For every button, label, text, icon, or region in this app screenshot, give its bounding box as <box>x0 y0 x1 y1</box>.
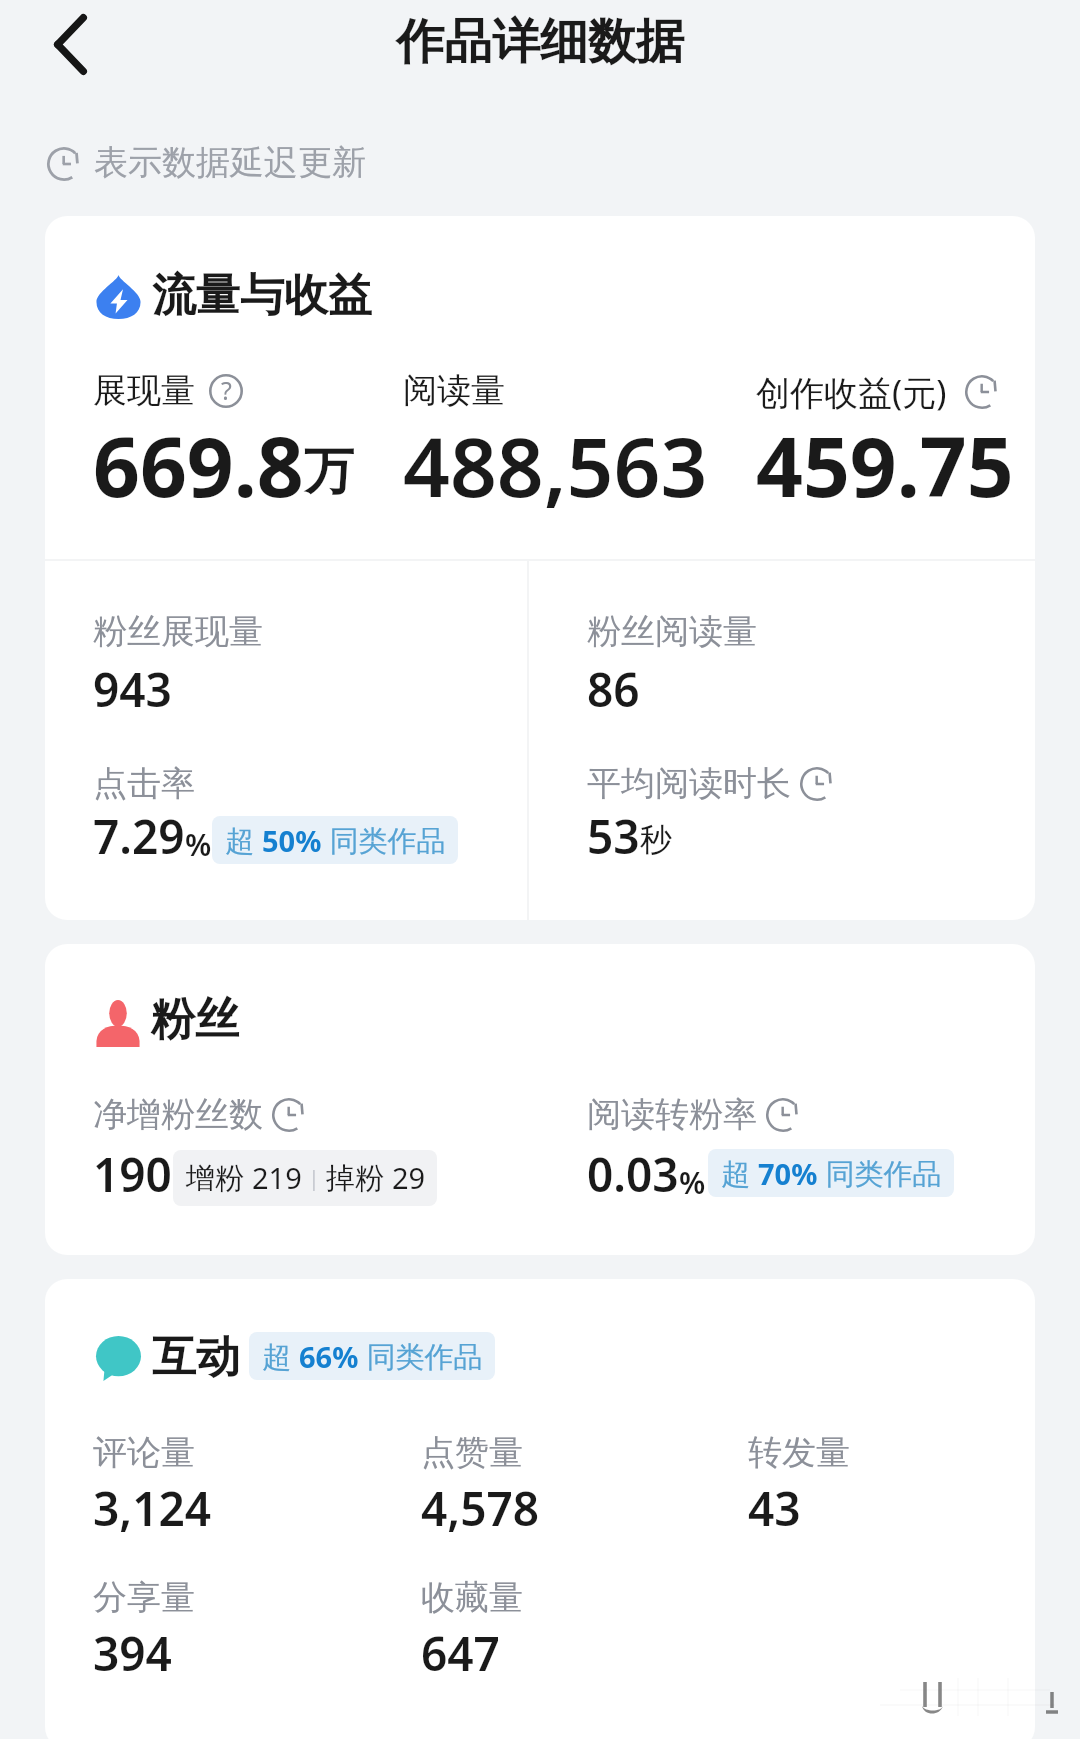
staticText: 流量与收益 <box>152 268 372 323</box>
staticText: 190 <box>93 1143 172 1206</box>
staticText: 43 <box>748 1477 801 1540</box>
staticText: 86 <box>587 658 640 721</box>
staticText: 展现量 <box>93 369 195 412</box>
button[interactable]: 超 <box>212 816 458 864</box>
staticText: ? <box>221 373 232 407</box>
staticText: 转发量 <box>748 1431 850 1474</box>
staticText: 平均阅读时长 <box>587 762 791 805</box>
staticText: 分享量 <box>93 1576 195 1619</box>
staticText: 4,578 <box>421 1477 540 1540</box>
button[interactable]: 超 <box>708 1149 954 1197</box>
staticText: 收藏量 <box>421 1576 523 1619</box>
staticText: 669.8 <box>93 409 304 521</box>
staticText: 66% <box>299 1337 359 1376</box>
staticText: 阅读量 <box>403 369 505 412</box>
staticText: 作品详细数据 <box>396 12 684 72</box>
staticText: 53 <box>587 805 640 868</box>
staticText: 7.29 <box>93 805 185 868</box>
staticText: 秒 <box>640 820 672 860</box>
staticText: 647 <box>421 1622 500 1672</box>
staticText: 超 <box>721 1153 758 1193</box>
staticText: 394 <box>93 1622 172 1672</box>
staticText: 增粉 <box>186 1157 252 1197</box>
staticText: 阅读转粉率 <box>587 1093 757 1136</box>
staticText: 评论量 <box>93 1431 195 1474</box>
staticText: 点赞量 <box>421 1431 523 1474</box>
staticText: 0.03 <box>587 1143 679 1206</box>
staticText: 净增粉丝数 <box>93 1093 263 1136</box>
staticText: | <box>302 1162 326 1192</box>
staticText: 万 <box>304 440 354 503</box>
staticText: 70% <box>758 1154 818 1193</box>
button[interactable]: 超 <box>249 1332 495 1380</box>
staticText: 表示数据延迟更新 <box>94 141 366 184</box>
staticText: 互动 <box>152 1330 240 1385</box>
staticText: 29 <box>392 1158 426 1197</box>
staticText: 3,124 <box>93 1477 212 1540</box>
staticText: 粉丝展现量 <box>93 610 263 653</box>
staticText: 点击率 <box>93 762 195 805</box>
staticText: 943 <box>93 658 172 721</box>
staticText: 粉丝阅读量 <box>587 610 757 653</box>
staticText: 粉丝 <box>151 992 239 1047</box>
staticText: 同类作品 <box>359 1336 483 1376</box>
staticText: % <box>185 824 212 865</box>
staticText: 219 <box>252 1158 302 1197</box>
staticText: 超 <box>262 1336 299 1376</box>
button[interactable]: Back <box>32 6 108 82</box>
staticText: 488,563 <box>403 409 708 521</box>
staticText: 超 <box>225 820 262 860</box>
staticText: 同类作品 <box>818 1153 942 1193</box>
staticText: 掉粉 <box>326 1157 392 1197</box>
button[interactable]: 增粉 <box>173 1150 437 1206</box>
staticText: 459.75 <box>756 409 1014 521</box>
staticText: 创作收益(元) <box>756 369 947 415</box>
staticText: 同类作品 <box>322 820 446 860</box>
staticText: 50% <box>262 821 322 860</box>
staticText: % <box>679 1162 706 1203</box>
